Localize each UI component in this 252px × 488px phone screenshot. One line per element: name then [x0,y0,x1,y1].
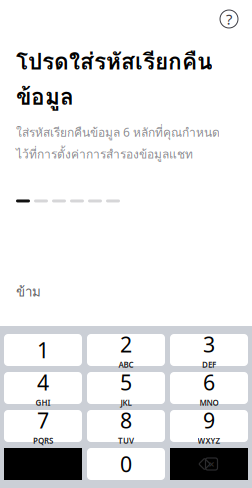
staticText: TUV [118,435,134,446]
button[interactable]: Delete [170,448,248,480]
staticText: DEF [202,359,216,370]
staticText: GHI [35,397,50,408]
staticText: ใส่รหัสเรียกคืนข้อมูล 6 หลักที่คุณกำหนดไ… [16,123,220,163]
staticText: WXYZ [197,435,220,446]
button[interactable]: 7 [4,410,82,442]
button[interactable]: 0 [87,448,165,480]
button[interactable]: 2 [87,334,165,366]
staticText: × [208,457,214,471]
staticText: JKL [120,397,131,408]
staticText: 5 [120,368,132,396]
button[interactable]: 8 [87,410,165,442]
staticText: 7 [37,406,49,434]
button[interactable]: 9 [170,410,248,442]
staticText: 3 [203,330,215,358]
staticText: 4 [37,368,49,396]
button[interactable]: 5 [87,372,165,404]
button[interactable]: 4 [4,372,82,404]
staticText: 0 [120,450,132,478]
staticText: โปรดใส่รหัสเรียกคืนข้อมูล [16,44,212,114]
button[interactable]: 1 [4,334,82,366]
staticText: ข้าม [16,281,41,302]
staticText: 1 [37,336,49,364]
staticText: 9 [203,406,215,434]
staticText: PQRS [33,435,53,446]
staticText: 8 [120,406,132,434]
button[interactable]: 3 [170,334,248,366]
button[interactable]: Help [220,10,238,28]
staticText: MNO [199,397,218,408]
button[interactable]: ข้าม [0,275,57,308]
staticText: 2 [120,330,132,358]
button[interactable]: 6 [170,372,248,404]
staticText: ? [226,9,232,29]
staticText: ABC [118,359,133,370]
staticText: 6 [203,368,215,396]
